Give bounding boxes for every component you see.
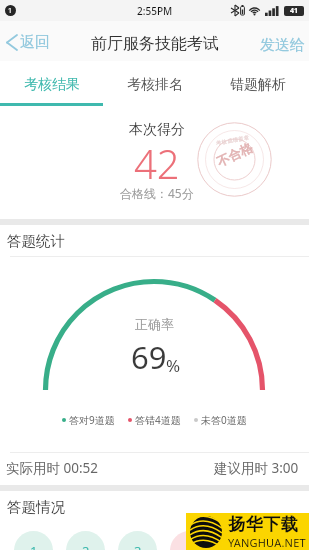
staticText: 答对9道题 <box>69 413 115 427</box>
staticText: 69 <box>131 336 167 378</box>
button[interactable]: 发送给 <box>252 21 309 61</box>
staticText: 正确率 <box>135 316 174 332</box>
staticText: 6 <box>290 542 298 550</box>
button[interactable]: 1 <box>14 531 53 550</box>
staticText: 前厅服务技能考试 <box>91 34 219 54</box>
button[interactable]: 错题解析 <box>206 61 309 106</box>
staticText: YANGHUA.NET <box>228 535 306 550</box>
button[interactable]: 5 <box>222 531 261 550</box>
staticText: % <box>166 354 181 377</box>
staticText: 5 <box>238 542 246 550</box>
button[interactable]: 3 <box>118 531 157 550</box>
staticText: 答题统计 <box>7 232 65 250</box>
staticText: 2 <box>82 542 90 550</box>
staticText: 1 <box>8 6 13 16</box>
staticText: 不合格 <box>214 140 256 170</box>
button[interactable]: 6 <box>274 531 309 550</box>
staticText: 考核结果 <box>24 76 80 94</box>
button[interactable]: 返回 <box>0 21 58 61</box>
staticText: 3 <box>134 542 142 550</box>
button[interactable]: 4 <box>170 531 209 550</box>
staticText: 答错4道题 <box>135 413 181 427</box>
staticText: 实际用时 00:52 <box>6 459 99 477</box>
staticText: 发送给 <box>260 36 305 55</box>
button[interactable]: 2 <box>66 531 105 550</box>
staticText: 42 <box>134 136 180 190</box>
staticText: 合格线：45分 <box>120 185 194 201</box>
staticText: 41 <box>290 6 299 16</box>
button[interactable]: 考核排名 <box>103 61 206 106</box>
staticText: 扬华下载 <box>228 514 298 535</box>
staticText: 未答0道题 <box>201 413 247 427</box>
staticText: 返回 <box>20 33 50 52</box>
staticText: 错题解析 <box>230 76 286 94</box>
button[interactable]: 考核结果 <box>0 61 103 106</box>
staticText: 本次得分 <box>129 121 185 139</box>
staticText: 考核排名 <box>127 76 183 94</box>
staticText: 答题情况 <box>7 498 65 516</box>
staticText: 1 <box>30 542 38 550</box>
staticText: 考核成绩盖章 <box>216 134 250 146</box>
staticText: 2:55PM <box>137 4 173 18</box>
staticText: 建议用时 3:00 <box>214 459 299 477</box>
